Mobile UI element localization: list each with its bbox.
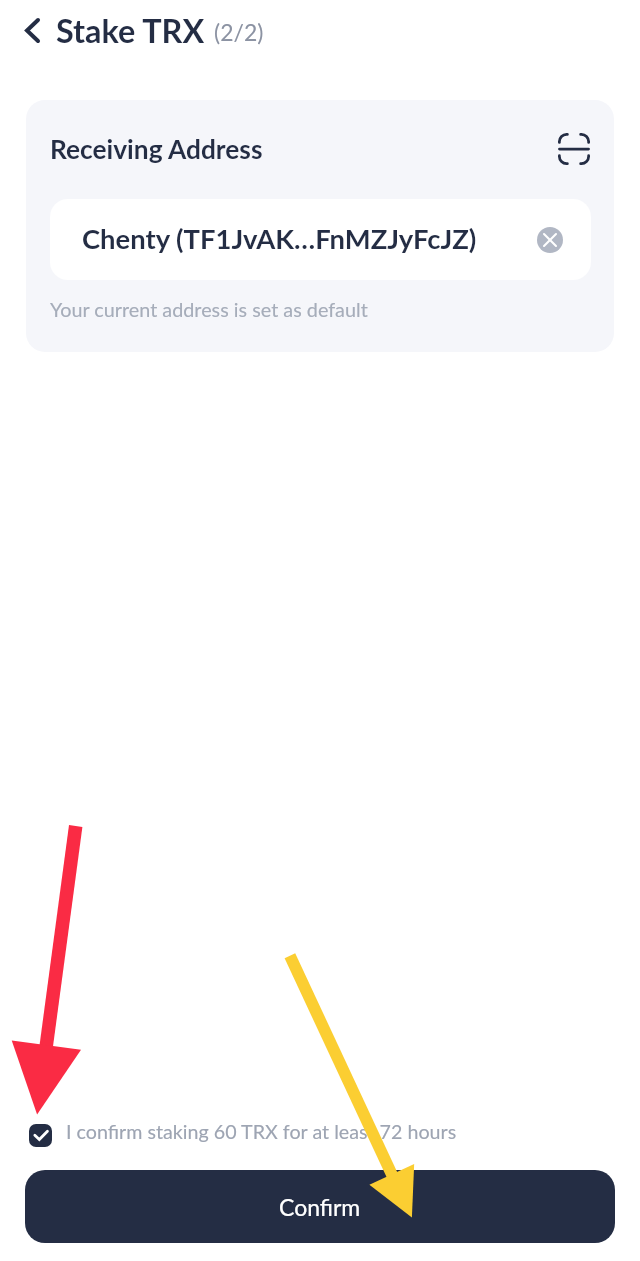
staticText: Stake TRX bbox=[56, 11, 205, 50]
button[interactable]: Back bbox=[10, 6, 54, 54]
button[interactable]: Scan QR code bbox=[552, 127, 596, 171]
button[interactable]: Clear address bbox=[537, 227, 563, 253]
staticText: Receiving Address bbox=[50, 133, 263, 165]
staticText: Your current address is set as default bbox=[50, 297, 368, 321]
button[interactable]: Chenty (TF1JvAK…FnMZJyFcJZ) bbox=[50, 199, 591, 280]
button[interactable]: Confirm bbox=[25, 1170, 615, 1243]
staticText: Confirm bbox=[279, 1193, 361, 1221]
staticText: (2/2) bbox=[214, 18, 264, 46]
staticText: I confirm staking 60 TRX for at least 72… bbox=[66, 1120, 457, 1144]
button[interactable]: I confirm staking 60 TRX for at least 72… bbox=[29, 1117, 457, 1147]
staticText: Chenty (TF1JvAK…FnMZJyFcJZ) bbox=[82, 222, 477, 255]
